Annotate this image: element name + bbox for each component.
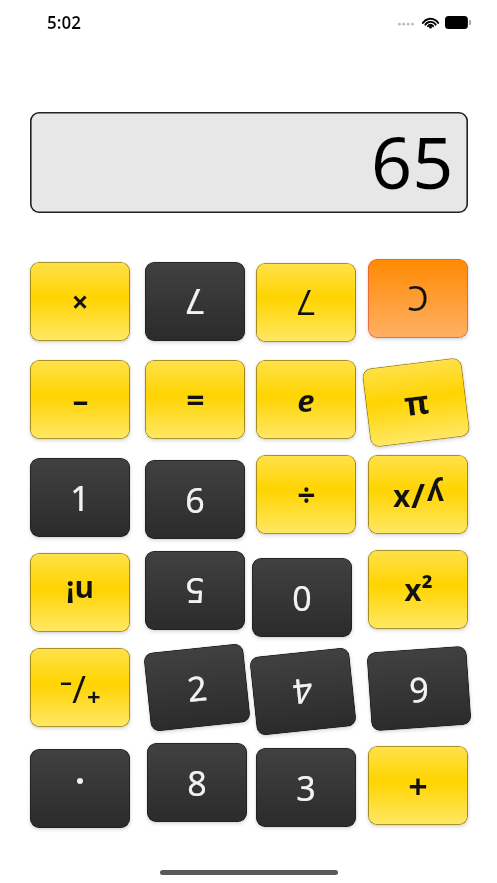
button[interactable]: x² xyxy=(368,550,468,629)
staticText: 7 xyxy=(185,279,205,325)
button[interactable]: 3 xyxy=(256,748,356,827)
button[interactable]: 1 xyxy=(30,458,130,537)
button[interactable]: π xyxy=(362,357,470,448)
staticText: 8 xyxy=(187,760,207,806)
button[interactable]: ÷ xyxy=(256,455,356,534)
staticText: + xyxy=(408,763,428,809)
staticText: 0 xyxy=(292,575,312,621)
button[interactable]: 7 xyxy=(145,262,245,341)
staticText: 7 xyxy=(296,280,316,326)
staticText: + xyxy=(87,680,101,713)
button[interactable]: – xyxy=(30,360,130,439)
button[interactable]: = xyxy=(145,360,245,439)
staticText: 6 xyxy=(185,477,205,523)
staticText: x xyxy=(393,475,411,516)
button[interactable]: negate xyxy=(30,648,130,727)
staticText: C xyxy=(407,276,429,322)
button[interactable]: × xyxy=(30,262,130,341)
staticText: ÷ xyxy=(297,473,316,517)
button[interactable]: 9 xyxy=(366,646,472,731)
staticText: x² xyxy=(404,569,433,610)
button[interactable]: + xyxy=(368,746,468,825)
staticText: 1 xyxy=(70,475,90,521)
button[interactable]: 2 xyxy=(143,643,251,732)
button[interactable]: 7 xyxy=(256,263,356,342)
button[interactable]: n! xyxy=(30,553,130,632)
staticText: 65 xyxy=(371,112,454,209)
button[interactable]: e xyxy=(256,360,356,439)
button[interactable]: 0 xyxy=(252,558,352,637)
staticText: 2 xyxy=(185,664,209,712)
button[interactable]: 65 xyxy=(30,112,468,213)
staticText: 4 xyxy=(291,668,315,716)
button[interactable]: 5 xyxy=(145,551,245,630)
staticText: 9 xyxy=(407,665,431,713)
button[interactable]: 8 xyxy=(147,743,247,822)
staticText: – xyxy=(72,378,89,422)
staticText: 5:02 xyxy=(47,11,81,34)
staticText: = xyxy=(186,378,205,422)
button[interactable]: x over y xyxy=(368,455,468,534)
button[interactable]: C xyxy=(368,259,468,338)
staticText: e xyxy=(297,379,315,421)
staticText: y xyxy=(426,475,444,516)
staticText: 3 xyxy=(296,765,316,811)
staticText: π xyxy=(401,379,432,426)
button[interactable]: 4 xyxy=(249,647,357,736)
staticText: 5 xyxy=(185,568,205,614)
button[interactable]: 6 xyxy=(145,460,245,539)
staticText: / xyxy=(72,662,87,714)
staticText: – xyxy=(60,664,72,697)
staticText: / xyxy=(411,472,426,518)
button[interactable]: decimal point xyxy=(30,749,130,828)
staticText: n! xyxy=(66,572,94,613)
staticText: × xyxy=(71,281,89,322)
